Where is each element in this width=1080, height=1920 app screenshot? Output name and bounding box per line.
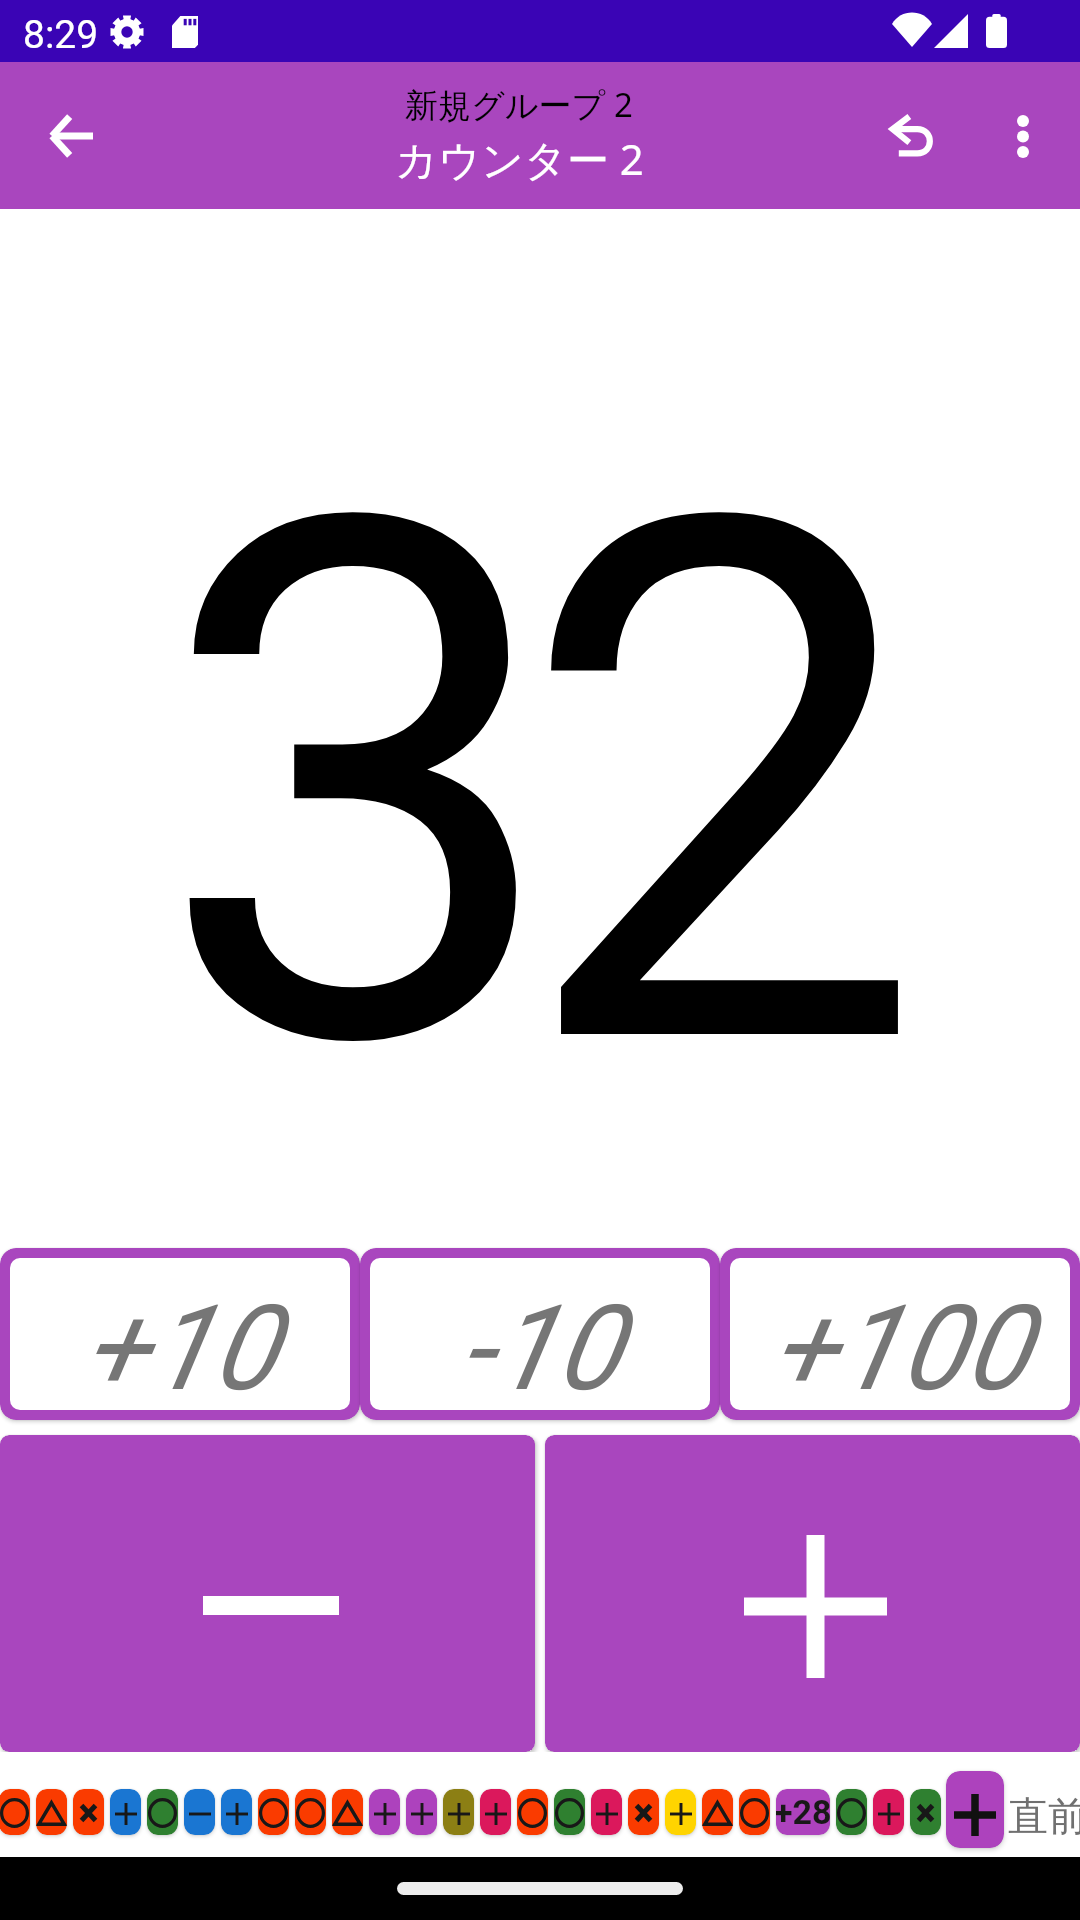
button[interactable]: -10 [370,1258,710,1410]
button[interactable]: Add counter [946,1771,1004,1848]
button[interactable] [702,1789,733,1835]
button[interactable]: +100 [730,1258,1070,1410]
button[interactable]: More options [968,81,1078,191]
button[interactable] [0,1789,30,1835]
button[interactable] [665,1789,696,1835]
button[interactable] [836,1789,867,1835]
button[interactable] [73,1789,104,1835]
button[interactable]: Decrement [0,1435,535,1752]
staticText: +10 [83,1280,277,1410]
staticText: +100 [771,1280,1029,1410]
button[interactable] [110,1789,141,1835]
button[interactable] [443,1789,474,1835]
staticText: 32 [156,362,880,1210]
button[interactable] [591,1789,622,1835]
button[interactable] [147,1789,178,1835]
button[interactable] [873,1789,904,1835]
button[interactable] [554,1789,585,1835]
button[interactable] [910,1789,941,1835]
staticText: +28 [776,1792,830,1832]
button[interactable] [628,1789,659,1835]
button[interactable]: Increment [545,1435,1080,1752]
button[interactable] [480,1789,511,1835]
button[interactable]: +10 [10,1258,350,1410]
button[interactable] [258,1789,289,1835]
staticText: 直前 [1008,1791,1080,1841]
staticText: カウンター 2 [395,130,644,187]
button[interactable] [184,1789,215,1835]
button[interactable] [406,1789,437,1835]
button[interactable] [517,1789,548,1835]
button[interactable] [221,1789,252,1835]
button[interactable]: Undo [857,79,967,189]
button[interactable] [295,1789,326,1835]
staticText: -10 [460,1280,621,1410]
button[interactable] [332,1789,363,1835]
button[interactable]: Back [16,81,126,191]
button[interactable] [36,1789,67,1835]
button[interactable] [369,1789,400,1835]
button[interactable]: +28 [776,1789,830,1835]
staticText: 新規グループ 2 [405,82,633,127]
staticText: 8:29 [23,12,99,58]
button[interactable] [739,1789,770,1835]
